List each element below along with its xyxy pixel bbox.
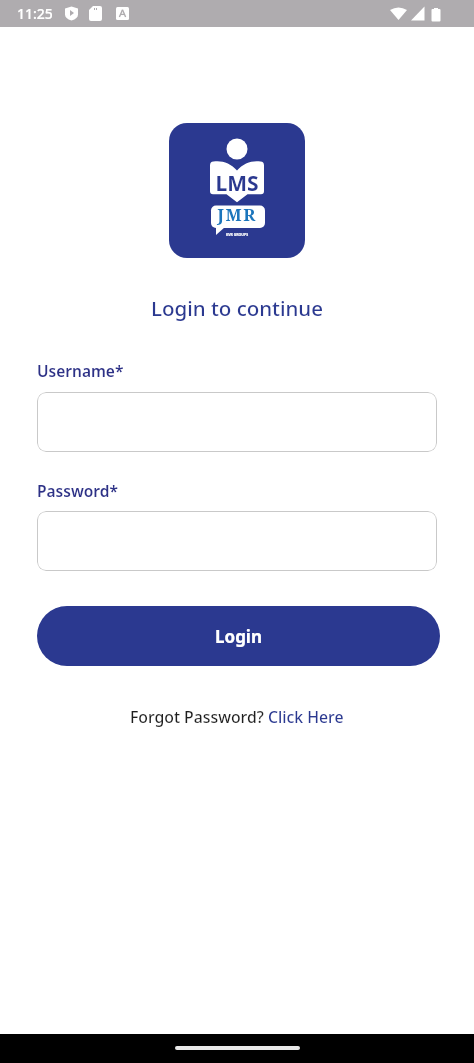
staticText: JMR (169, 203, 305, 226)
staticText: Password* (37, 480, 118, 501)
button[interactable] (37, 392, 437, 452)
button[interactable] (37, 511, 437, 571)
staticText: LMS (169, 169, 305, 198)
staticText: Login (215, 625, 263, 648)
staticText: 11:25 (17, 4, 53, 23)
staticText: Login to continue (0, 294, 474, 322)
staticText: KVR GROUPS (169, 232, 305, 237)
staticText: Username* (37, 360, 124, 381)
button[interactable]: Forgot Password? Click Here (0, 706, 474, 728)
button[interactable]: Login (37, 606, 440, 666)
staticText: Forgot Password? Click Here (130, 706, 344, 728)
